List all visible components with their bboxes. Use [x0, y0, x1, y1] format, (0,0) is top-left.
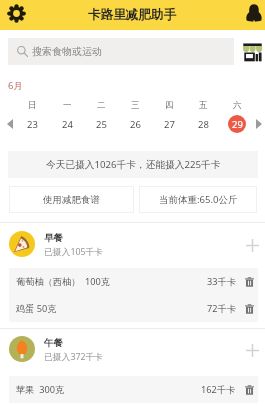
button[interactable]: 26	[118, 114, 152, 134]
staticText: 29	[232, 118, 243, 131]
staticText: 今天已摄入1026千卡，还能摄入225千卡	[46, 158, 221, 171]
staticText: 二	[97, 100, 106, 111]
button[interactable]: Store	[242, 42, 263, 63]
button[interactable]: 28	[186, 114, 220, 134]
staticText: 已摄入105千卡	[44, 246, 104, 258]
staticText: 使用减肥食谱	[43, 194, 100, 206]
button[interactable]: Messages	[244, 3, 264, 23]
staticText: 午餐	[44, 337, 63, 349]
button[interactable]: 24	[50, 114, 84, 134]
staticText: 三	[131, 100, 140, 111]
button[interactable]: Delete	[242, 301, 257, 316]
staticText: 苹果 300克	[16, 383, 201, 396]
staticText: 一	[63, 100, 72, 111]
button[interactable]: Previous week	[3, 114, 17, 134]
staticText: 已摄入372千卡	[44, 351, 104, 363]
button[interactable]: Delete	[242, 382, 257, 397]
staticText: 26	[130, 118, 141, 131]
staticText: 162千卡	[201, 383, 236, 396]
staticText: 日	[28, 100, 37, 111]
button[interactable]: Add food	[240, 233, 264, 257]
staticText: 72千卡	[207, 302, 236, 315]
staticText: 葡萄柚（西柚） 100克	[16, 275, 207, 288]
button[interactable]: 葡萄柚（西柚） 100克	[9, 268, 258, 295]
staticText: 搜索食物或运动	[32, 45, 102, 58]
button[interactable]: Next week	[252, 114, 265, 134]
button[interactable]: 使用减肥食谱	[9, 186, 134, 213]
staticText: 28	[198, 118, 209, 131]
staticText: 当前体重:65.0公斤	[159, 193, 238, 206]
staticText: 25	[96, 118, 107, 131]
button[interactable]: 午餐	[0, 332, 265, 366]
staticText: 五	[199, 100, 208, 111]
button[interactable]: Settings	[5, 2, 27, 24]
button[interactable]: Delete	[242, 274, 257, 289]
button[interactable]: 苹果 300克	[9, 376, 258, 403]
staticText: 24	[62, 118, 73, 131]
staticText: 卡路里减肥助手	[88, 7, 177, 23]
staticText: 27	[164, 118, 175, 131]
staticText: 早餐	[44, 232, 63, 244]
button[interactable]: 25	[84, 114, 118, 134]
staticText: 四	[165, 100, 174, 111]
staticText: 鸡蛋 50克	[16, 302, 207, 315]
button[interactable]: 鸡蛋 50克	[9, 295, 258, 322]
button[interactable]: 搜索食物或运动	[8, 38, 234, 65]
staticText: 6月	[8, 79, 23, 92]
staticText: 33千卡	[207, 275, 236, 288]
staticText: 23	[27, 118, 38, 131]
button[interactable]: 27	[152, 114, 186, 134]
button[interactable]: 29	[220, 114, 254, 134]
button[interactable]: Add food	[240, 338, 264, 362]
staticText: 六	[233, 100, 242, 111]
button[interactable]: 23	[15, 114, 50, 134]
button[interactable]: 今天已摄入1026千卡，还能摄入225千卡	[8, 151, 258, 178]
button[interactable]: 当前体重:65.0公斤	[139, 186, 257, 213]
button[interactable]: 早餐	[0, 227, 265, 261]
